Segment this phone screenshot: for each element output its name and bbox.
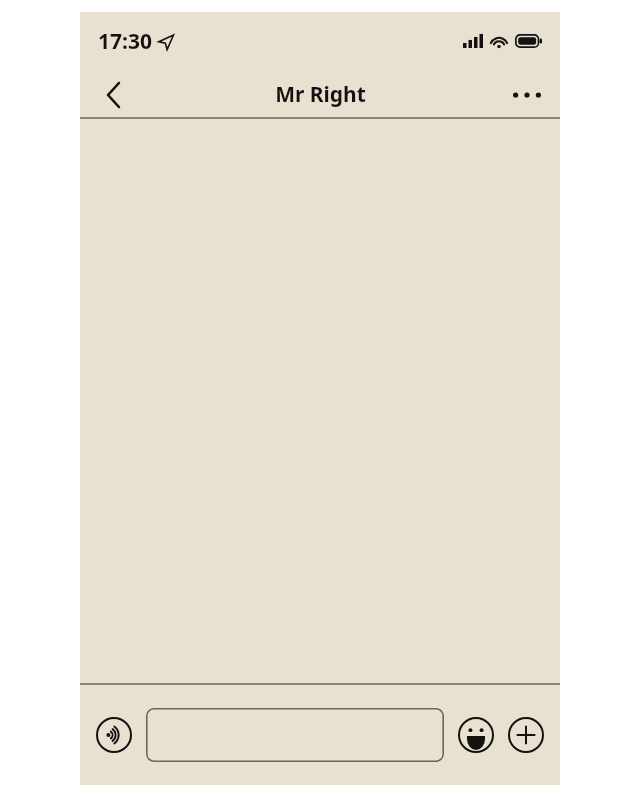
staticText: 17:30 [98, 27, 152, 56]
staticText: Mr Right [275, 80, 366, 109]
button[interactable]: More options [504, 72, 550, 118]
button[interactable]: Message input [146, 708, 444, 762]
button[interactable]: Back [90, 72, 136, 118]
button[interactable]: Emoji [456, 715, 496, 755]
button[interactable]: Voice message [94, 715, 134, 755]
button[interactable]: More actions [506, 715, 546, 755]
